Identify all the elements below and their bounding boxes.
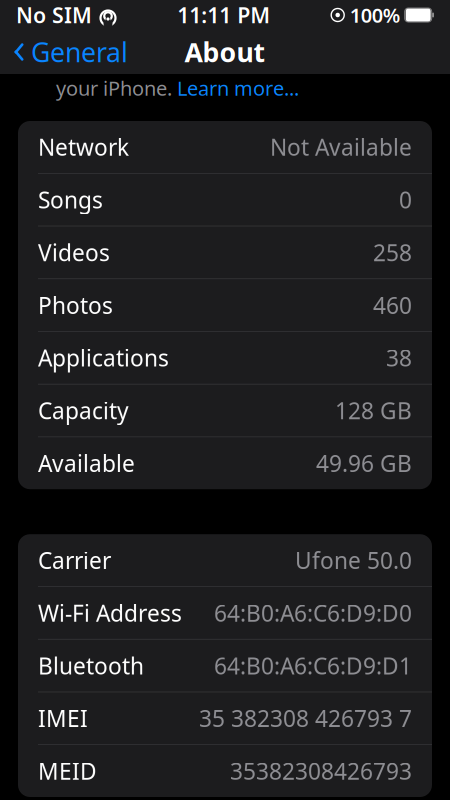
button[interactable]: Bluetooth [18,640,432,692]
staticText: MEID [38,756,97,786]
staticText: General [31,34,128,70]
staticText: 11:11 PM [177,1,270,29]
staticText: 64:B0:A6:C6:D9:D0 [214,598,412,628]
staticText: Available [38,448,135,478]
staticText: Learn more... [177,75,299,101]
button[interactable]: Network [18,121,432,174]
staticText: Applications [38,343,169,373]
staticText: 128 GB [335,395,412,425]
button[interactable]: Wi-Fi Address [18,587,432,640]
staticText: Wi-Fi Address [38,598,182,628]
staticText: Songs [38,185,103,215]
staticText: 35382308426793 [230,756,412,786]
button[interactable]: Videos [18,226,432,279]
staticText: your iPhone. [56,75,177,101]
staticText: Carrier [38,545,111,575]
button[interactable]: IMEI [18,692,432,745]
button[interactable]: Learn more... [177,75,299,101]
staticText: Videos [38,237,110,267]
staticText: 100% [350,2,401,28]
staticText: Photos [38,290,113,320]
staticText: 258 [373,237,412,267]
staticText: 64:B0:A6:C6:D9:D1 [214,650,412,681]
staticText: 38 [386,343,412,373]
button[interactable]: MEID [18,745,432,797]
staticText: No SIM [16,1,92,29]
staticText: Bluetooth [38,650,144,681]
staticText: 460 [373,290,412,320]
button[interactable]: Capacity [18,384,432,437]
button[interactable]: Available [18,437,432,489]
button[interactable]: Carrier [18,534,432,587]
staticText: 49.96 GB [316,448,412,478]
staticText: Capacity [38,395,129,425]
staticText: About [184,34,265,70]
button[interactable]: Back to General [4,30,136,74]
staticText: Network [38,132,129,162]
button[interactable]: Songs [18,174,432,226]
staticText: IMEI [38,703,88,733]
button[interactable]: Photos [18,279,432,332]
staticText: Ufone 50.0 [295,545,412,575]
staticText: 0 [399,185,412,215]
button[interactable]: Applications [18,332,432,384]
staticText: 35 382308 426793 7 [199,703,412,733]
staticText: Not Available [270,132,412,162]
